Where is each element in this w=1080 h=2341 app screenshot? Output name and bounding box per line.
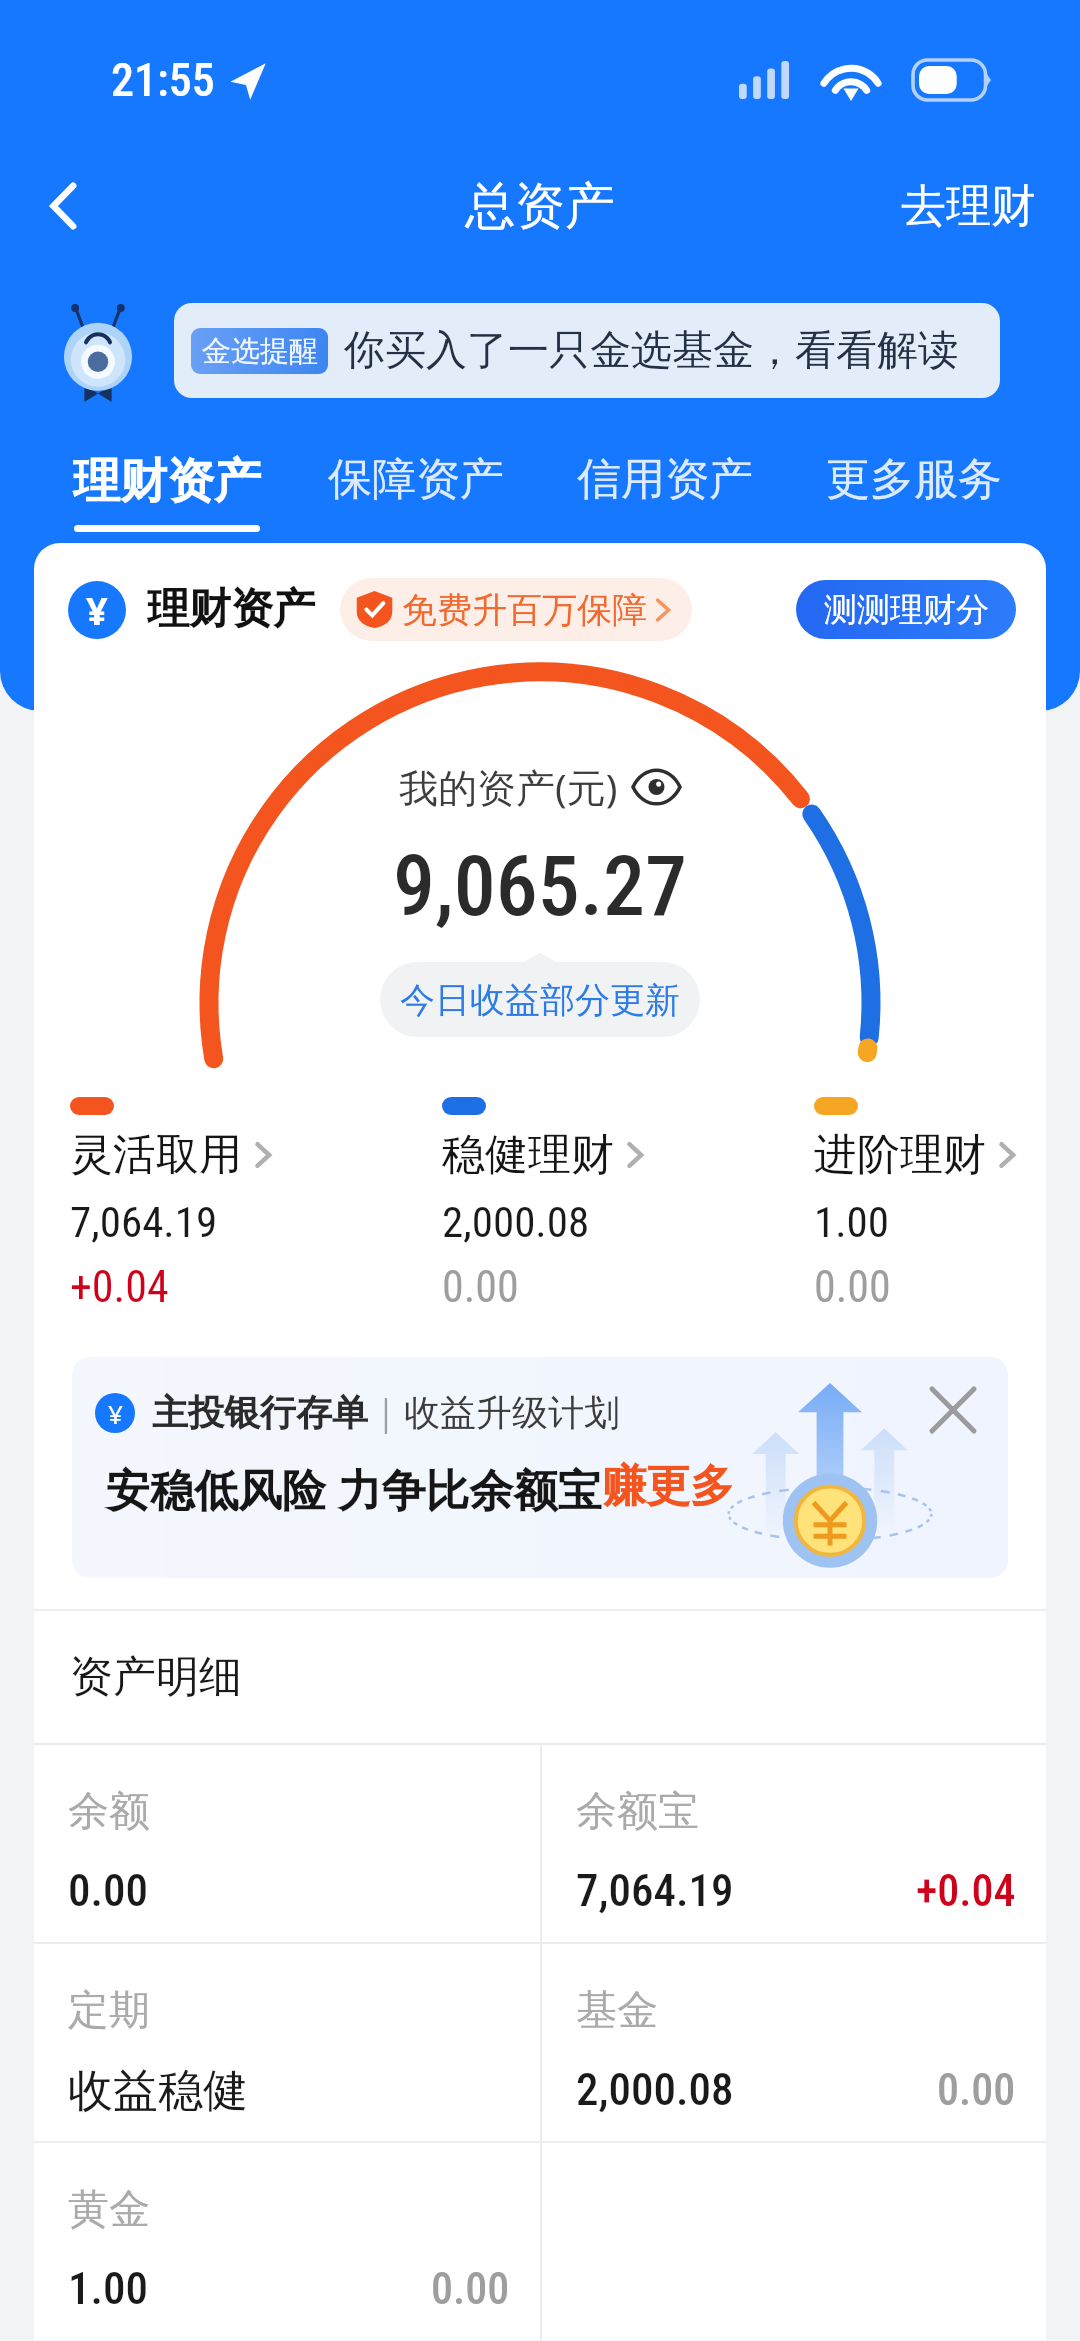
button[interactable]: ¥ <box>72 1357 1008 1578</box>
staticText: 安稳低风险 力争比余额宝 <box>106 1459 602 1519</box>
button[interactable]: 黄金 <box>34 2141 540 2340</box>
staticText: 余额 <box>68 1786 150 1838</box>
staticText: 进阶理财 <box>814 1128 986 1182</box>
staticText: 赚更多 <box>602 1459 734 1514</box>
staticText: 免费升百万保障 <box>402 588 647 632</box>
button[interactable]: 去理财 <box>901 178 1036 235</box>
staticText: 保障资产 <box>328 452 504 507</box>
button[interactable]: 余额宝 <box>542 1743 1046 1942</box>
staticText: 0.00 <box>68 1864 149 1917</box>
button[interactable]: Close <box>922 1379 984 1441</box>
staticText: 我的资产(元) <box>399 760 618 813</box>
button[interactable]: 定期 <box>34 1942 540 2141</box>
button[interactable]: 今日收益部分更新 <box>380 962 700 1037</box>
button[interactable]: 进阶理财 <box>814 1097 1036 1313</box>
staticText: 定期 <box>68 1985 150 2037</box>
staticText: 金选提醒 <box>202 333 318 370</box>
staticText: 1.00 <box>814 1197 890 1247</box>
staticText: 0.00 <box>431 2263 510 2315</box>
button[interactable]: 基金 <box>542 1942 1046 2141</box>
staticText: 测测理财分 <box>824 589 989 631</box>
staticText: 2,000.08 <box>442 1197 590 1247</box>
staticText: 更多服务 <box>826 452 1002 507</box>
staticText: 9,065.27 <box>393 837 688 935</box>
staticText: 0.00 <box>814 1261 891 1313</box>
staticText: 你买入了一只金选基金，看看解读 <box>344 325 959 377</box>
staticText: 灵活取用 <box>70 1128 242 1182</box>
staticText: 今日收益部分更新 <box>400 978 680 1022</box>
staticText: 主投银行存单 <box>152 1390 368 1435</box>
button[interactable]: 测测理财分 <box>796 580 1016 639</box>
staticText: +0.04 <box>70 1261 169 1313</box>
staticText: +0.04 <box>916 1865 1016 1917</box>
staticText: 收益升级计划 <box>404 1390 620 1435</box>
staticText: 理财资产 <box>147 583 315 636</box>
staticText: ¥ <box>108 1396 123 1431</box>
button[interactable]: 免费升百万保障 <box>356 578 672 641</box>
staticText: 稳健理财 <box>442 1128 614 1182</box>
staticText: 2,000.08 <box>576 2063 734 2116</box>
staticText: 信用资产 <box>577 452 753 507</box>
button[interactable]: Back <box>26 168 102 244</box>
staticText: 基金 <box>576 1985 658 2037</box>
staticText: ¥ <box>86 584 108 636</box>
button[interactable]: 余额 <box>34 1743 540 1942</box>
staticText: 1.00 <box>68 2262 149 2315</box>
staticText: 总资产 <box>465 175 615 238</box>
button[interactable]: 保障资产 <box>291 438 540 507</box>
staticText: 21:55 <box>111 53 215 107</box>
staticText: 收益稳健 <box>68 2063 248 2120</box>
staticText: 0.00 <box>442 1261 519 1313</box>
staticText: 资产明细 <box>70 1650 242 1704</box>
staticText: 余额宝 <box>576 1786 699 1838</box>
staticText: 0.00 <box>937 2064 1016 2116</box>
button[interactable]: 理财资产 <box>42 438 291 532</box>
staticText: 7,064.19 <box>576 1864 734 1917</box>
staticText: 理财资产 <box>73 452 261 511</box>
staticText: ｜ <box>368 1390 404 1435</box>
staticText: 7,064.19 <box>70 1197 218 1247</box>
staticText: 去理财 <box>901 178 1036 235</box>
button[interactable]: 更多服务 <box>789 438 1038 507</box>
button[interactable]: 信用资产 <box>540 438 789 507</box>
staticText: 黄金 <box>68 2184 150 2236</box>
button[interactable]: 稳健理财 <box>442 1097 814 1313</box>
button[interactable]: 灵活取用 <box>70 1097 442 1313</box>
button[interactable]: 金选提醒 <box>174 303 1000 398</box>
